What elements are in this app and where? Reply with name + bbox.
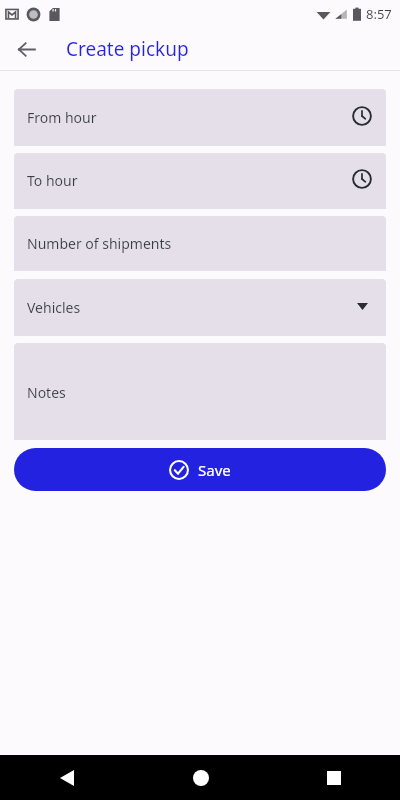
other: Pick time [352, 106, 372, 126]
button[interactable]: Recent apps [267, 755, 400, 800]
button[interactable]: From hour [14, 89, 386, 146]
button[interactable]: Home [134, 755, 267, 800]
other: Pick time [352, 169, 372, 189]
other: Open dropdown [352, 296, 372, 316]
staticText: 8:57 [366, 5, 392, 23]
staticText: Number of shipments [27, 234, 172, 253]
staticText: Vehicles [27, 298, 81, 317]
button[interactable]: Back [8, 31, 44, 67]
staticText: Notes [27, 383, 66, 402]
staticText: To hour [27, 171, 78, 190]
button[interactable]: Number of shipments [14, 216, 386, 271]
button[interactable]: To hour [14, 153, 386, 209]
button[interactable]: Save [14, 448, 386, 491]
staticText: From hour [27, 108, 97, 127]
button[interactable]: Notes [14, 343, 386, 440]
staticText: Create pickup [66, 36, 189, 62]
button[interactable]: Back [0, 755, 134, 800]
button[interactable]: Vehicles [14, 279, 386, 336]
staticText: Save [198, 460, 231, 480]
